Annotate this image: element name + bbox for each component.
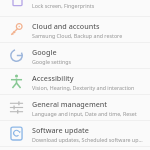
staticText: Google <box>32 47 57 57</box>
staticText: Lock screen, Fingerprints <box>32 2 95 9</box>
button[interactable]: Accessibility <box>0 69 150 94</box>
button[interactable]: General management <box>0 95 150 120</box>
button[interactable]: Software update <box>0 121 150 146</box>
button[interactable]: Cloud and accounts <box>0 17 150 42</box>
button[interactable]: Google <box>0 43 150 68</box>
staticText: Language and input, Date and time, Reset <box>32 110 137 117</box>
staticText: Cloud and accounts <box>32 21 100 31</box>
staticText: Download updates, Scheduled software up… <box>32 136 143 143</box>
staticText: Vision, Hearing, Dexterity and interacti… <box>32 84 135 91</box>
button[interactable]: Lock screen, Fingerprints <box>0 0 150 16</box>
staticText: Accessibility <box>32 73 74 83</box>
staticText: Software update <box>32 125 89 135</box>
staticText: Samsung Cloud, Backup and restore <box>32 32 123 39</box>
staticText: General management <box>32 99 108 109</box>
staticText: Google settings <box>32 58 72 65</box>
